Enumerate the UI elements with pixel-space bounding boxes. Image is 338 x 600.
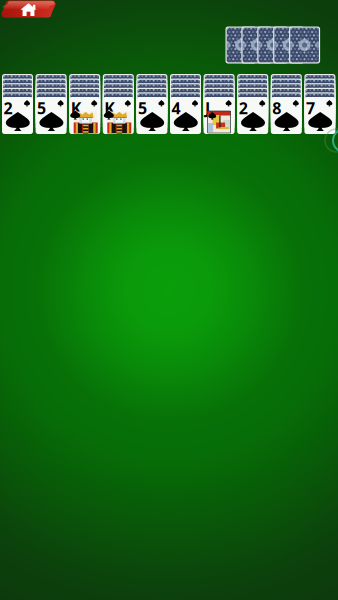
staticText: 2: [3, 97, 12, 119]
staticText: K: [104, 97, 115, 119]
staticText: 7: [306, 97, 315, 119]
staticText: K: [71, 97, 82, 119]
staticText: 5: [138, 97, 147, 119]
staticText: 5: [37, 97, 46, 119]
button[interactable]: Home: [1, 0, 55, 17]
staticText: 4: [171, 97, 180, 119]
staticText: J: [205, 97, 210, 119]
staticText: 8: [272, 97, 281, 119]
staticText: 2: [239, 97, 248, 119]
